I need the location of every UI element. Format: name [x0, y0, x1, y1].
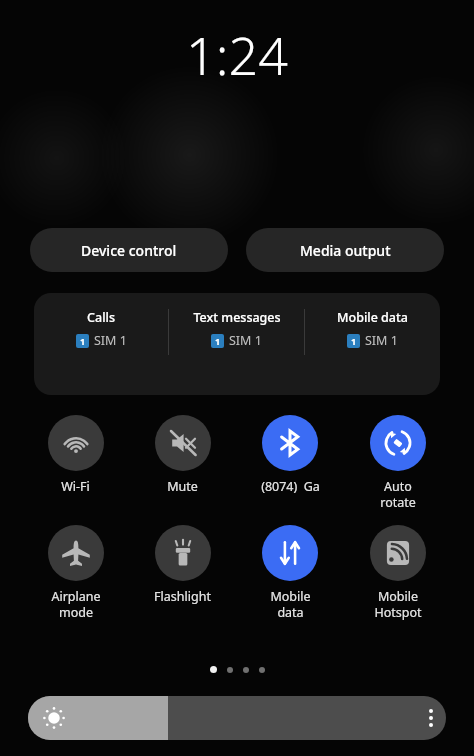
- button[interactable]: Brightness: [28, 696, 446, 740]
- button[interactable]: Device control: [30, 228, 228, 272]
- staticText: 1: [80, 335, 86, 347]
- staticText: Calls: [87, 309, 115, 326]
- button[interactable]: Calls: [34, 293, 440, 395]
- button[interactable]: Airplane mode: [22, 523, 129, 620]
- staticText: Flashlight: [154, 588, 211, 605]
- staticText: Device control: [81, 241, 177, 260]
- button[interactable]: Mobile data: [236, 523, 344, 620]
- staticText: Mute: [167, 478, 198, 495]
- staticText: 1: [351, 335, 357, 347]
- button[interactable]: (8074) Ga: [236, 413, 344, 495]
- button[interactable]: Wi-Fi: [22, 413, 129, 495]
- staticText: SIM 1: [229, 332, 262, 349]
- button[interactable]: Mute: [129, 413, 236, 495]
- staticText: 1: [215, 335, 221, 347]
- button[interactable]: Media output: [246, 228, 444, 272]
- staticText: Media output: [300, 241, 391, 260]
- staticText: (8074) Ga: [261, 478, 320, 495]
- staticText: Mobile data: [270, 588, 311, 620]
- button[interactable]: Mobile Hotspot: [344, 523, 452, 620]
- staticText: SIM 1: [365, 332, 398, 349]
- staticText: Wi-Fi: [61, 478, 90, 495]
- button[interactable]: Auto rotate: [344, 413, 452, 510]
- staticText: Airplane mode: [51, 588, 101, 620]
- staticText: Auto rotate: [380, 478, 416, 510]
- staticText: Mobile Hotspot: [374, 588, 422, 620]
- staticText: Text messages: [193, 309, 281, 326]
- staticText: Mobile data: [337, 309, 408, 326]
- staticText: SIM 1: [94, 332, 127, 349]
- staticText: 1:24: [186, 19, 288, 90]
- button[interactable]: Flashlight: [129, 523, 236, 605]
